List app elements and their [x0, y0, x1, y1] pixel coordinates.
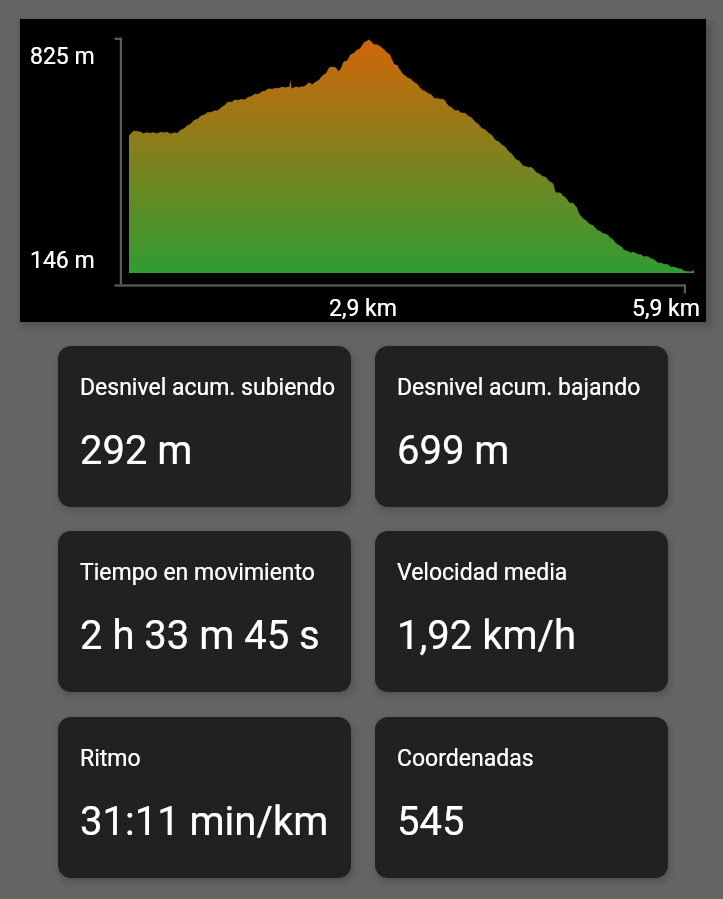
button[interactable]: Velocidad media [375, 531, 668, 692]
staticText: Desnivel acum. bajando [397, 374, 641, 401]
staticText: 146 m [30, 247, 95, 274]
button[interactable]: Tiempo en movimiento [58, 531, 351, 692]
button[interactable]: Coordenadas [375, 717, 668, 878]
staticText: Desnivel acum. subiendo [80, 374, 336, 401]
staticText: 825 m [30, 43, 95, 70]
staticText: 2,9 km [329, 295, 397, 322]
staticText: 31:11 min/km [80, 798, 329, 845]
staticText: Coordenadas [397, 745, 534, 772]
staticText: 292 m [80, 427, 193, 474]
button[interactable]: Perfil de elevacion de la ruta [20, 19, 706, 322]
button[interactable]: Desnivel acum. subiendo [58, 346, 351, 507]
staticText: 545 [397, 798, 465, 845]
staticText: 699 m [397, 427, 510, 474]
staticText: 1,92 km/h [397, 612, 577, 659]
button[interactable]: Ritmo [58, 717, 351, 878]
button[interactable]: Desnivel acum. bajando [375, 346, 668, 507]
staticText: 5,9 km [632, 295, 700, 322]
staticText: Tiempo en movimiento [80, 559, 315, 586]
staticText: Ritmo [80, 745, 141, 772]
staticText: 2 h 33 m 45 s [80, 612, 320, 659]
staticText: Velocidad media [397, 559, 568, 586]
